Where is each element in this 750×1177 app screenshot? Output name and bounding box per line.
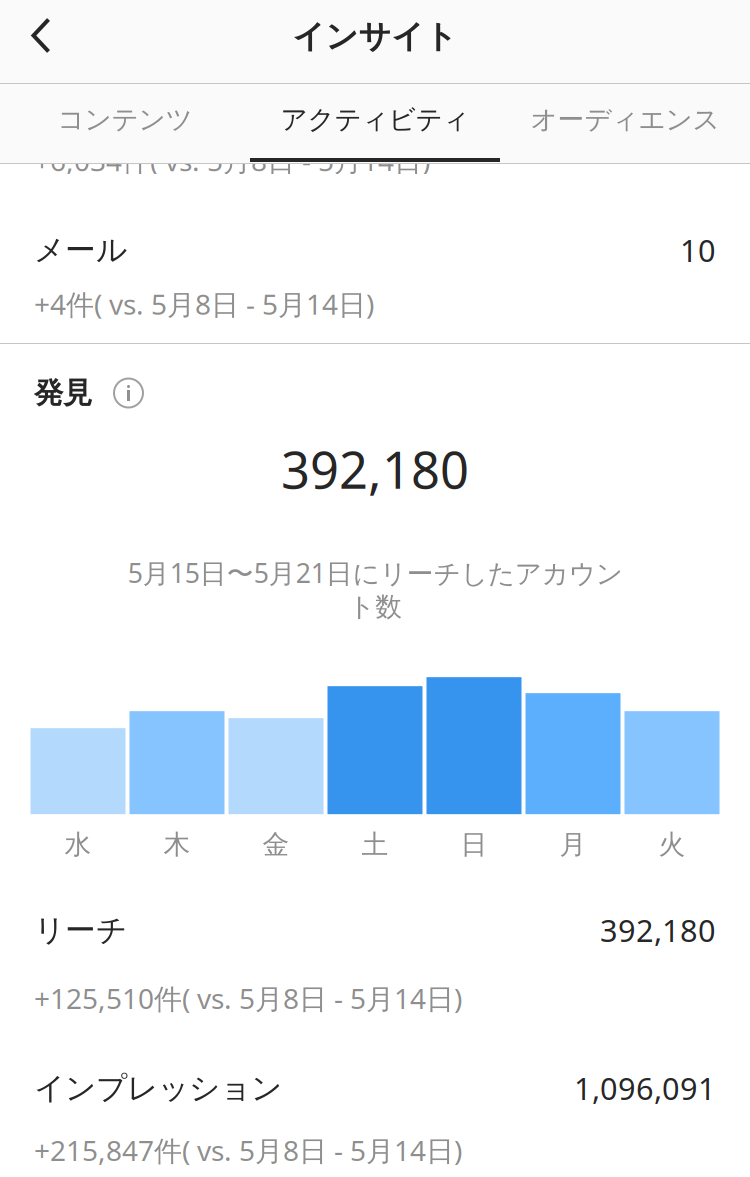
staticText: メール bbox=[34, 231, 127, 269]
staticText: +125,510件( vs. 5月8日 - 5月14日) bbox=[34, 980, 462, 1017]
button[interactable]: オーディエンス bbox=[500, 84, 750, 163]
staticText: 1,096,091 bbox=[574, 1068, 716, 1108]
staticText: 発見 bbox=[34, 375, 92, 411]
staticText: +6,034件( vs. 5月8日 - 5月14日) bbox=[34, 142, 430, 179]
button[interactable]: コンテンツ bbox=[0, 84, 250, 163]
staticText: 日 bbox=[460, 828, 487, 861]
staticText: 木 bbox=[163, 828, 190, 861]
staticText: コンテンツ bbox=[57, 103, 192, 136]
staticText: 5月15日〜5月21日にリーチしたアカウント数 bbox=[127, 555, 622, 623]
staticText: +4件( vs. 5月8日 - 5月14日) bbox=[34, 285, 374, 323]
staticText: リーチ bbox=[34, 911, 127, 949]
staticText: 392,180 bbox=[600, 910, 716, 950]
button[interactable]: アクティビティ bbox=[250, 84, 500, 163]
staticText: 10 bbox=[680, 230, 716, 270]
staticText: +215,847件( vs. 5月8日 - 5月14日) bbox=[34, 1132, 462, 1169]
staticText: オーディエンス bbox=[530, 103, 719, 136]
staticText: 月 bbox=[559, 828, 586, 861]
staticText: アクティビティ bbox=[280, 103, 469, 136]
button[interactable]: 戻る bbox=[0, 0, 86, 83]
staticText: 水 bbox=[64, 828, 91, 861]
staticText: 火 bbox=[658, 828, 685, 861]
button[interactable]: 発見について bbox=[113, 377, 144, 408]
staticText: インプレッション bbox=[34, 1069, 282, 1107]
staticText: 金 bbox=[262, 828, 289, 861]
staticText: インサイト bbox=[292, 17, 457, 56]
staticText: 392,180 bbox=[281, 435, 469, 503]
staticText: 土 bbox=[361, 828, 388, 861]
